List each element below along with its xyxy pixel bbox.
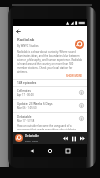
staticText: Mar 06 · 1:05:50 xyxy=(17,106,37,110)
staticText: Radiolab xyxy=(17,37,35,43)
staticText: Apr 17 · 00:00 xyxy=(17,93,34,97)
staticText: SHOW MORE xyxy=(66,74,82,78)
button[interactable]: Rewind 10 seconds xyxy=(61,134,69,142)
button[interactable]: Recent apps xyxy=(63,146,73,156)
staticText: 148 episodes xyxy=(17,81,37,85)
staticText: By WNYC Studios xyxy=(17,44,39,48)
staticText: How an outsider became the vanguard of a… xyxy=(17,124,78,130)
staticText: Mar 17 · 57:58 xyxy=(17,119,35,123)
button[interactable]: Back xyxy=(15,28,22,35)
button[interactable]: Debatable xyxy=(13,132,87,144)
button[interactable]: Debatable xyxy=(13,113,87,132)
staticText: Debatable xyxy=(17,115,32,119)
button[interactable]: Pause xyxy=(69,134,78,143)
button[interactable]: SHOW MORE xyxy=(65,74,83,78)
button[interactable]: Home xyxy=(45,146,55,156)
staticText: Radiolab is a show about curiosity. Wher… xyxy=(17,50,83,74)
staticText: Cellmates xyxy=(17,89,31,93)
button[interactable]: Cellmates xyxy=(13,87,87,100)
staticText: Debatable xyxy=(25,134,39,138)
button[interactable]: Forward 30 seconds xyxy=(78,134,86,142)
button[interactable]: Update: 23 Weeks 6 Days xyxy=(13,100,87,113)
staticText: Update: 23 Weeks 6 Days xyxy=(17,102,53,106)
button[interactable]: Back xyxy=(27,146,37,156)
staticText: 0:00 / 44:04 xyxy=(25,139,38,142)
